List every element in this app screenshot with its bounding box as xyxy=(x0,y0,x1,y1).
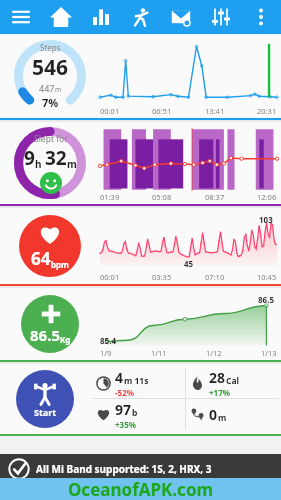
staticText: 1/11 xyxy=(151,348,167,358)
staticText: 1/13 xyxy=(261,348,277,358)
staticText: 13:41 xyxy=(205,106,225,116)
staticText: 7% xyxy=(42,95,59,110)
staticText: 0 xyxy=(209,405,218,424)
staticText: 10:45 xyxy=(257,272,277,282)
staticText: 4 xyxy=(115,368,124,387)
staticText: 9 xyxy=(24,145,35,171)
button[interactable]: 28 xyxy=(186,368,279,398)
staticText: 103 xyxy=(259,214,273,225)
button[interactable]: 4 xyxy=(92,368,185,398)
staticText: m xyxy=(67,157,77,171)
button[interactable]: Start workout xyxy=(16,370,74,428)
staticText: 32 xyxy=(45,145,67,171)
staticText: +17% xyxy=(209,387,230,398)
button[interactable]: More options xyxy=(241,0,281,34)
button[interactable]: Menu xyxy=(0,0,41,34)
staticText: 86.5 xyxy=(30,325,60,345)
staticText: 00:01 xyxy=(100,272,120,282)
button[interactable]: Slept for xyxy=(0,122,281,206)
staticText: OceanofAPK.com xyxy=(0,478,281,500)
staticText: 97 xyxy=(115,400,132,419)
staticText: 64 xyxy=(31,247,51,270)
staticText: 01:39 xyxy=(100,192,120,202)
staticText: 05:08 xyxy=(152,192,172,202)
staticText: bpm xyxy=(51,259,69,270)
staticText: +35% xyxy=(115,419,136,430)
staticText: m 11s xyxy=(124,375,149,387)
staticText: 546 xyxy=(32,53,69,82)
staticText: All Mi Band supported: 1S, 2, HRX, 3 xyxy=(36,462,212,476)
button[interactable]: Statistics xyxy=(81,0,121,34)
button[interactable]: Steps xyxy=(0,34,281,120)
staticText: Kg xyxy=(60,334,71,345)
staticText: 45 xyxy=(184,258,194,269)
staticText: 20:31 xyxy=(257,106,277,116)
staticText: m xyxy=(55,85,62,94)
staticText: 28 xyxy=(209,368,226,387)
staticText: b xyxy=(132,407,138,419)
staticText: 07:10 xyxy=(205,272,225,282)
staticText: 1/9 xyxy=(100,348,112,358)
staticText: -52% xyxy=(115,387,134,398)
staticText: 00:01 xyxy=(100,106,120,116)
button[interactable]: Workout xyxy=(121,0,161,34)
button[interactable]: 64 xyxy=(0,208,281,286)
staticText: 08:37 xyxy=(205,192,225,202)
staticText: 85.4 xyxy=(100,335,116,346)
staticText: 12:06 xyxy=(257,192,277,202)
button[interactable]: 97 xyxy=(92,399,185,430)
button[interactable]: Messages xyxy=(161,0,201,34)
staticText: Cal xyxy=(226,375,240,387)
button[interactable]: 86.5 xyxy=(0,288,281,362)
staticText: 447 xyxy=(39,82,55,94)
staticText: 03:35 xyxy=(152,272,172,282)
staticText: Steps xyxy=(40,42,61,53)
staticText: Slept for xyxy=(34,133,68,145)
staticText: h xyxy=(35,157,42,171)
button[interactable]: Settings xyxy=(201,0,241,34)
staticText: 1/12 xyxy=(206,348,222,358)
button[interactable]: 0 xyxy=(186,399,279,430)
staticText: 86.5 xyxy=(258,294,274,305)
staticText: m xyxy=(218,412,227,424)
staticText: 06:51 xyxy=(152,106,172,116)
button[interactable]: Home xyxy=(41,0,81,34)
staticText: Start xyxy=(34,406,57,418)
